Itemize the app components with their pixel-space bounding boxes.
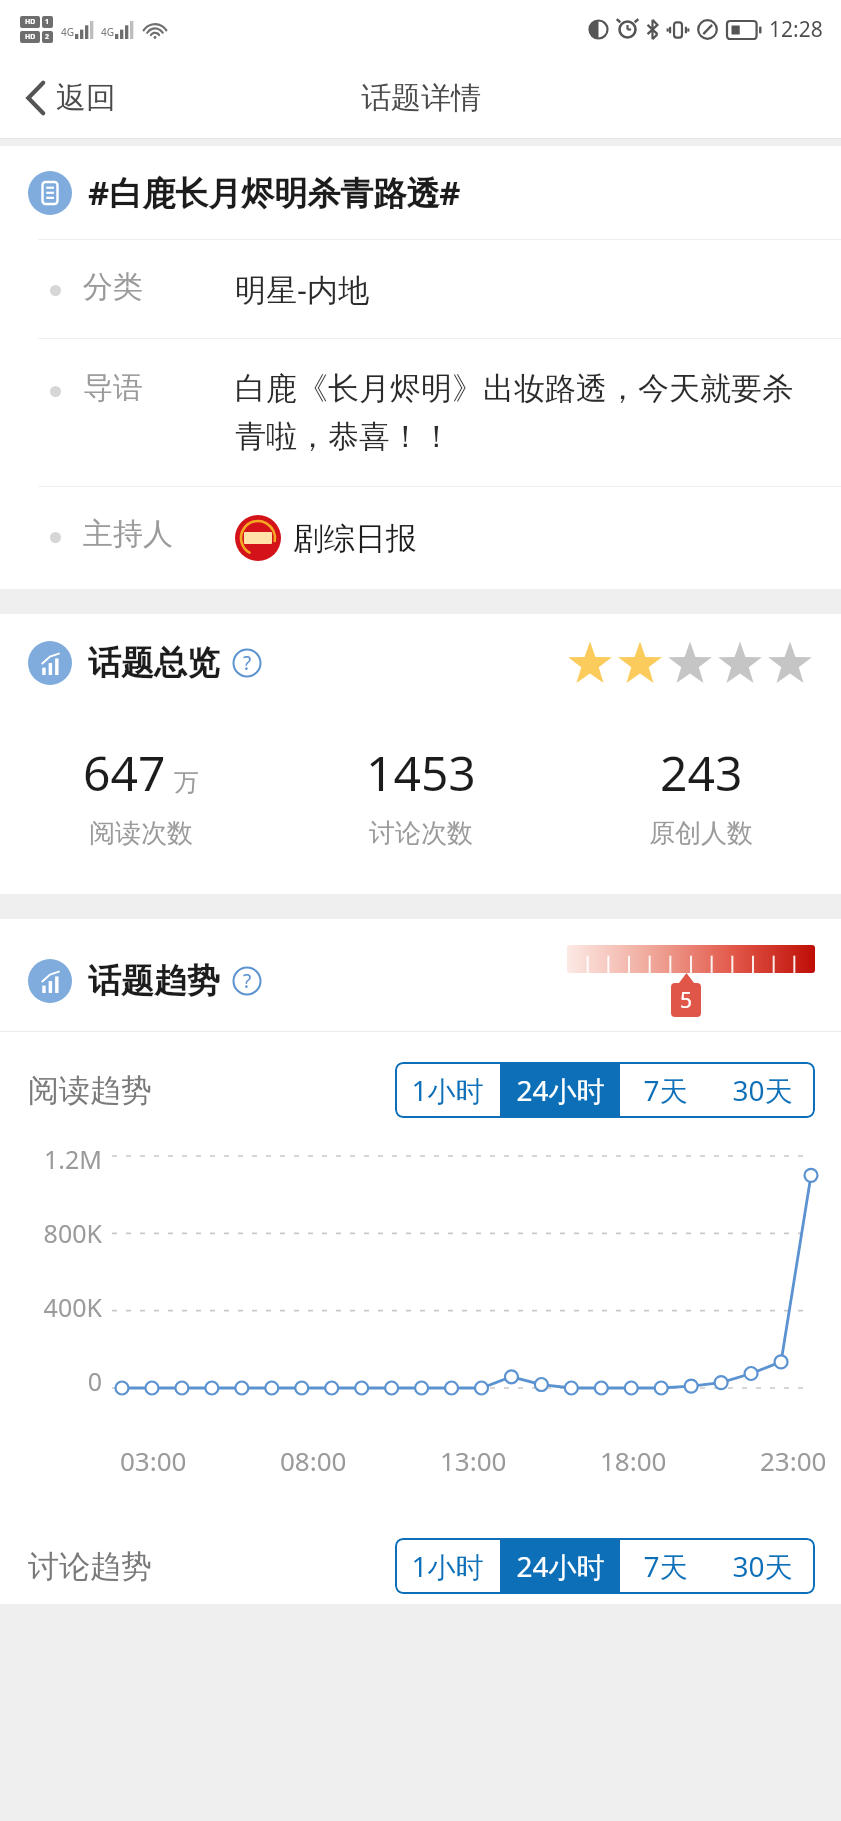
staticText: 话题总览 xyxy=(88,642,220,684)
button[interactable]: 导语 xyxy=(0,339,841,486)
staticText: 话题趋势 xyxy=(88,960,220,1002)
staticText: 03:00 xyxy=(120,1443,187,1478)
staticText: #白鹿长月烬明杀青路透# xyxy=(88,170,461,215)
other: Rating 2 of 5 stars xyxy=(567,640,813,686)
button[interactable]: Help xyxy=(232,966,262,996)
staticText: 23:00 xyxy=(760,1443,827,1478)
button[interactable]: 返回 xyxy=(16,70,124,126)
staticText: HD xyxy=(25,32,36,42)
staticText: 7天 xyxy=(643,1071,688,1109)
staticText: 647 xyxy=(83,740,166,805)
staticText: 阅读次数 xyxy=(89,817,193,850)
staticText: 24小时 xyxy=(516,1071,605,1109)
staticText: 话题详情 xyxy=(361,79,481,117)
staticText: 1.2M xyxy=(20,1142,102,1176)
button[interactable]: 24小时 xyxy=(500,1538,620,1594)
staticText: 导语 xyxy=(83,369,207,407)
staticText: ? xyxy=(243,650,252,676)
staticText: 400K xyxy=(20,1290,102,1324)
button[interactable]: 24小时 xyxy=(500,1062,620,1118)
staticText: 2 xyxy=(45,32,50,42)
staticText: 讨论次数 xyxy=(369,817,473,850)
staticText: 30天 xyxy=(732,1547,793,1585)
button[interactable]: #白鹿长月烬明杀青路透# xyxy=(0,146,841,239)
staticText: 分类 xyxy=(83,268,207,306)
staticText: 明星-内地 xyxy=(235,268,369,310)
staticText: 主持人 xyxy=(83,515,207,553)
button[interactable]: 7天 xyxy=(620,1062,710,1118)
staticText: 4G xyxy=(101,25,114,39)
staticText: 7天 xyxy=(643,1547,688,1585)
button[interactable]: 7天 xyxy=(620,1538,710,1594)
staticText: 18:00 xyxy=(600,1443,667,1478)
staticText: 阅读趋势 xyxy=(28,1071,152,1110)
staticText: 1453 xyxy=(366,740,476,805)
staticText: 0 xyxy=(20,1364,102,1398)
staticText: 30天 xyxy=(732,1071,793,1109)
staticText: ? xyxy=(243,968,252,994)
staticText: 1小时 xyxy=(411,1547,484,1585)
button[interactable]: 1小时 xyxy=(395,1062,500,1118)
staticText: 万 xyxy=(174,767,199,798)
staticText: 243 xyxy=(660,740,743,805)
staticText: 08:00 xyxy=(280,1443,347,1478)
staticText: 800K xyxy=(20,1216,102,1250)
staticText: 白鹿《长月烬明》出妆路透，今天就要杀青啦，恭喜！！ xyxy=(235,369,813,456)
button[interactable]: 30天 xyxy=(710,1538,815,1594)
staticText: 讨论趋势 xyxy=(28,1547,152,1586)
staticText: 24小时 xyxy=(516,1547,605,1585)
staticText: 13:00 xyxy=(440,1443,507,1478)
staticText: 原创人数 xyxy=(649,817,753,850)
button[interactable]: 主持人 xyxy=(0,487,841,589)
staticText: 返回 xyxy=(56,79,116,117)
button[interactable]: Help xyxy=(232,648,262,678)
staticText: 4G xyxy=(61,25,74,39)
button[interactable]: 30天 xyxy=(710,1062,815,1118)
staticText: 1小时 xyxy=(411,1071,484,1109)
staticText: 12:28 xyxy=(769,15,823,44)
button[interactable]: 1小时 xyxy=(395,1538,500,1594)
staticText: 剧综日报 xyxy=(293,519,417,558)
staticText: HD xyxy=(25,17,36,27)
staticText: 1 xyxy=(45,17,50,27)
staticText: 5 xyxy=(680,986,693,1015)
button[interactable]: 分类 xyxy=(0,240,841,338)
